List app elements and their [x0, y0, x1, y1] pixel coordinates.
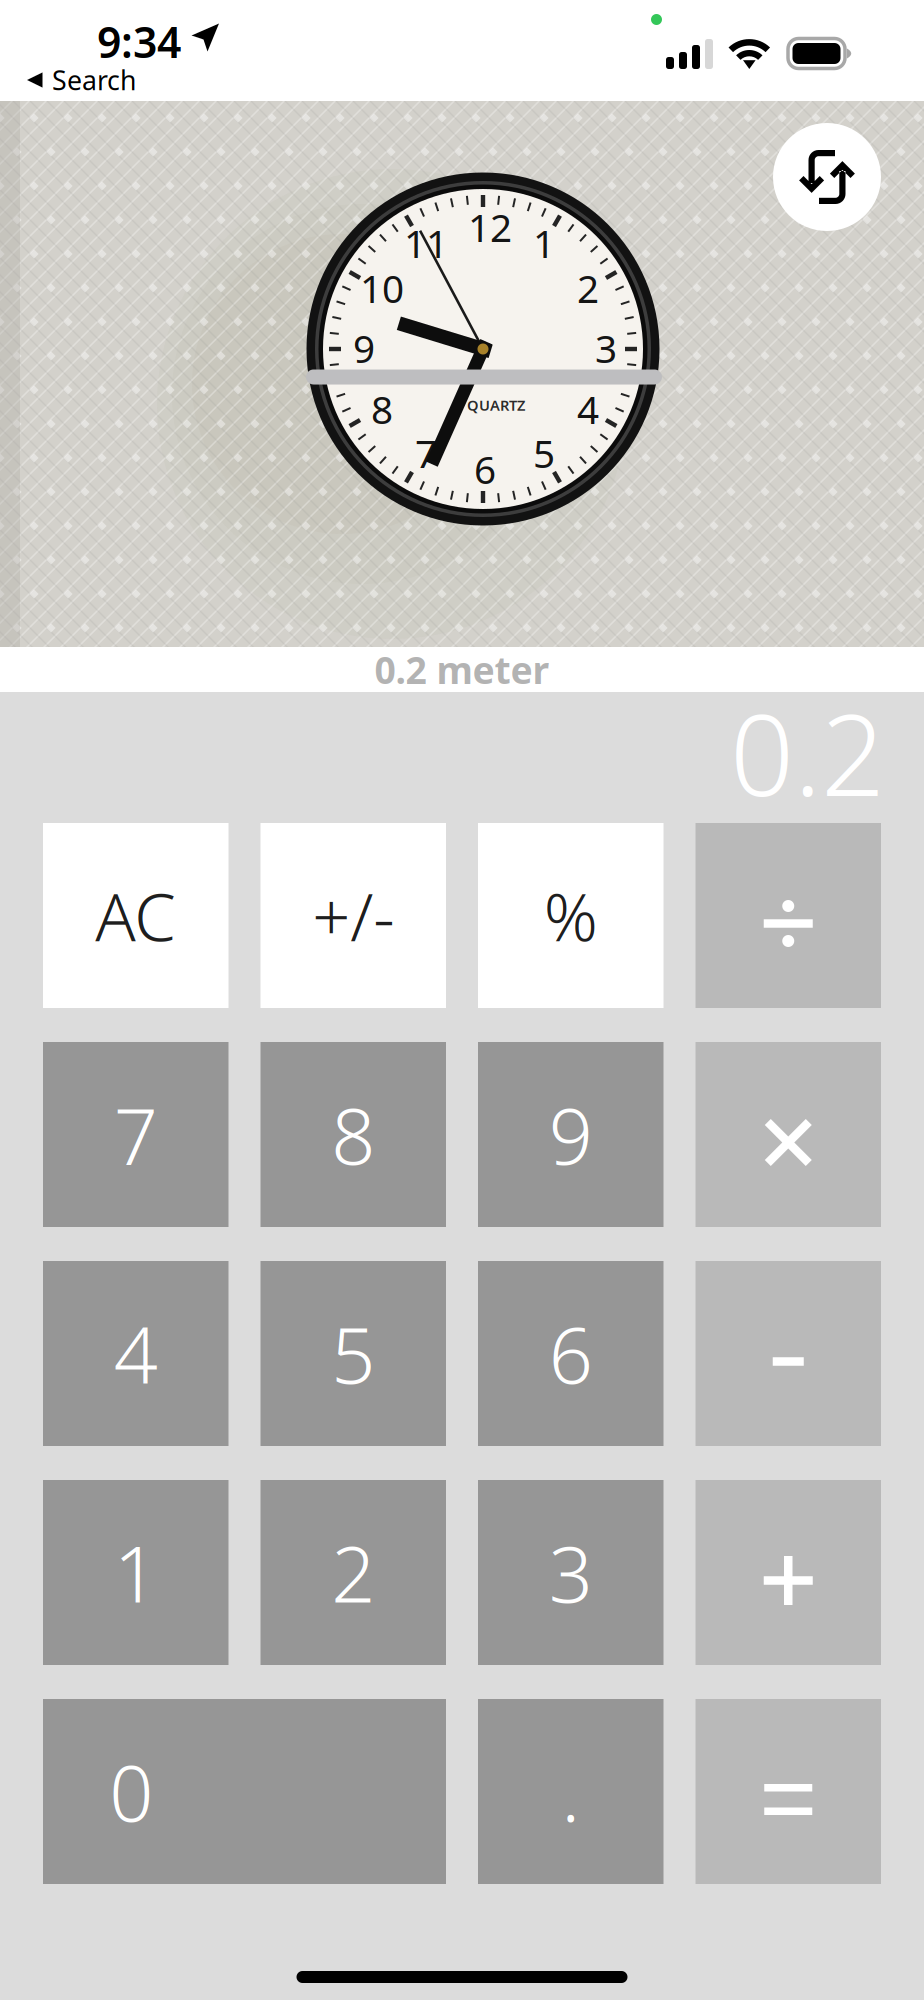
staticText: 11 — [404, 217, 448, 269]
staticText: % — [544, 871, 598, 960]
staticText: . — [561, 1740, 580, 1843]
button[interactable]: 5 — [260, 1261, 446, 1446]
staticText: 2 — [331, 1521, 375, 1624]
staticText: 1 — [533, 217, 555, 269]
button[interactable]: Search — [0, 63, 400, 97]
button[interactable]: 6 — [478, 1261, 663, 1446]
staticText: 9 — [549, 1083, 593, 1186]
staticText: 9 — [353, 322, 375, 374]
staticText: 0.2 — [730, 678, 885, 827]
staticText: 5 — [533, 427, 555, 479]
button[interactable]: 2 — [260, 1480, 446, 1665]
staticText: +/- — [312, 871, 394, 960]
button[interactable]: Add — [695, 1480, 881, 1665]
staticText: 5 — [331, 1302, 375, 1405]
staticText: 6 — [474, 443, 496, 495]
staticText: AC — [95, 871, 176, 960]
staticText: 9:34 — [97, 13, 181, 70]
button[interactable]: Equals — [695, 1699, 881, 1884]
button[interactable]: Percent — [478, 823, 663, 1008]
staticText: 3 — [549, 1521, 593, 1624]
staticText: 7 — [114, 1083, 158, 1186]
staticText: QUARTZ — [467, 395, 525, 415]
button[interactable]: 7 — [43, 1042, 228, 1227]
staticText: 7 — [415, 427, 437, 479]
staticText: 1 — [114, 1521, 158, 1624]
staticText: 0 — [109, 1740, 153, 1843]
staticText: 12 — [468, 201, 512, 253]
button[interactable]: Multiply — [695, 1042, 881, 1227]
button[interactable]: 4 — [43, 1261, 228, 1446]
staticText: 8 — [371, 383, 393, 435]
button[interactable]: 9 — [478, 1042, 663, 1227]
button[interactable]: Divide — [695, 823, 881, 1008]
staticText: Search — [52, 62, 136, 98]
button[interactable]: Plus minus — [260, 823, 446, 1008]
button[interactable]: 3 — [478, 1480, 663, 1665]
staticText: 2 — [577, 262, 599, 314]
staticText: 6 — [549, 1302, 593, 1405]
button[interactable]: AC — [43, 823, 228, 1008]
button[interactable]: Decimal point — [478, 1699, 663, 1884]
staticText: 4 — [114, 1302, 158, 1405]
staticText: 3 — [595, 322, 617, 374]
button[interactable]: Subtract — [695, 1261, 881, 1446]
staticText: 10 — [360, 262, 404, 314]
button[interactable]: 8 — [260, 1042, 446, 1227]
button[interactable]: Swap units — [773, 123, 881, 231]
button[interactable]: 0 — [43, 1699, 446, 1884]
staticText: 8 — [331, 1083, 375, 1186]
staticText: 0.2 meter — [374, 645, 549, 694]
staticText: 4 — [577, 383, 599, 435]
button[interactable]: 1 — [43, 1480, 228, 1665]
